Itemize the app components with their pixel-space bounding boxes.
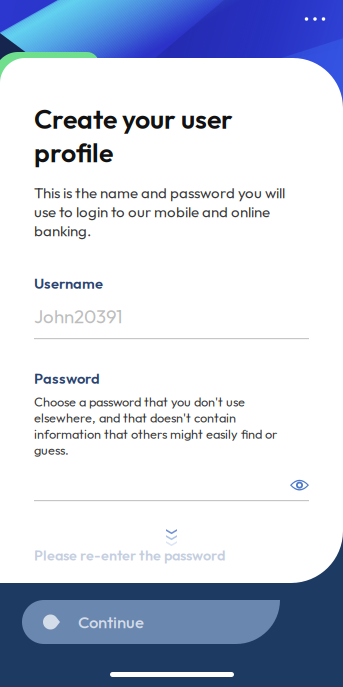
staticText: Please re-enter the password [34, 546, 225, 564]
button[interactable]: Show password [34, 470, 309, 500]
staticText: Username [34, 274, 103, 293]
staticText: Create your user profile [34, 102, 233, 169]
staticText: Continue [78, 611, 144, 632]
button[interactable]: More options [293, 4, 337, 34]
staticText: Password [34, 369, 100, 388]
staticText: Choose a password that you don't use els… [34, 394, 277, 458]
staticText: John20391 [34, 305, 122, 328]
staticText: This is the name and password you will u… [34, 183, 285, 240]
button[interactable]: Continue [22, 600, 280, 644]
